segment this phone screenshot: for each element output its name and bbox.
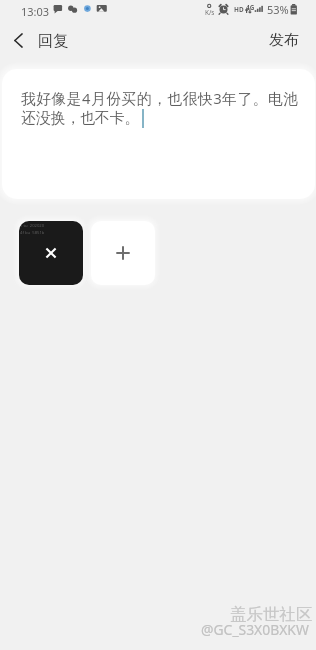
staticText: 1 tu 202020 4f bu 5851b xyxy=(20,223,45,235)
staticText: 53% xyxy=(267,2,289,17)
staticText: @GC_S3X0BXKW xyxy=(201,620,309,639)
staticText: 13:03 xyxy=(21,4,50,19)
button[interactable]: 我好像是4月份买的，也很快3年了。电池还没换，也不卡。 xyxy=(2,69,315,199)
staticText: 盖乐世社区 xyxy=(230,604,313,625)
button[interactable]: Add image xyxy=(91,221,155,285)
staticText: 回复 xyxy=(38,31,69,50)
staticText: 4G xyxy=(246,3,255,12)
staticText: K/s xyxy=(205,8,215,17)
button[interactable]: 发布 xyxy=(250,24,316,56)
staticText: HD xyxy=(234,5,244,14)
staticText: 发布 xyxy=(269,31,299,50)
staticText: 我好像是4月份买的，也很快3年了。电池还没换，也不卡。 xyxy=(21,88,298,128)
button[interactable]: 回复 xyxy=(0,24,81,56)
button[interactable]: Remove image xyxy=(19,221,83,285)
